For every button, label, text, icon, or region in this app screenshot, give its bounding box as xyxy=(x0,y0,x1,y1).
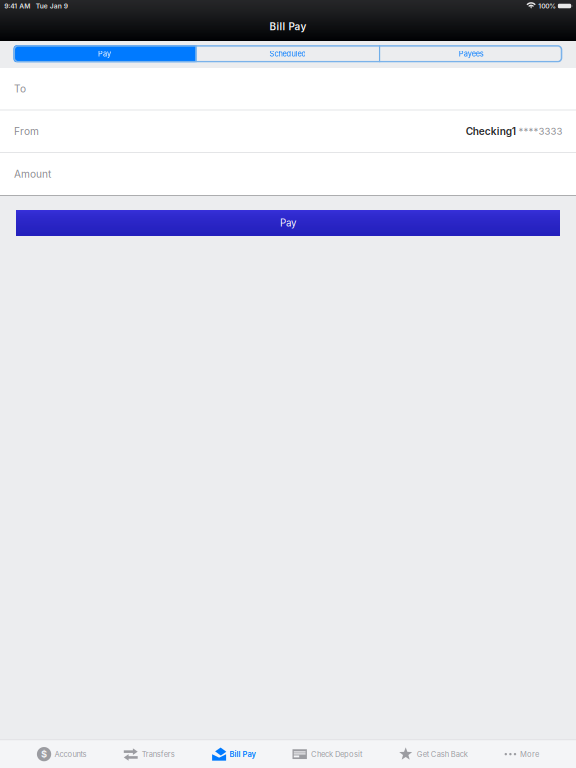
staticText: From xyxy=(14,125,39,137)
staticText: To xyxy=(14,83,26,95)
staticText: Pay xyxy=(98,49,111,58)
staticText: 9:41 AM xyxy=(4,2,30,10)
staticText: Bill Pay xyxy=(229,750,255,759)
staticText: Payees xyxy=(459,49,484,58)
button[interactable]: To xyxy=(0,68,576,109)
button[interactable]: Amount xyxy=(0,153,576,195)
staticText: $ xyxy=(41,748,47,760)
button[interactable]: From xyxy=(0,110,576,152)
button[interactable]: Scheduled xyxy=(197,45,379,62)
staticText: Bill Pay xyxy=(269,20,306,33)
staticText: More xyxy=(520,750,539,759)
staticText: Amount xyxy=(14,168,51,180)
button[interactable]: Pay xyxy=(13,45,196,62)
staticText: 100% xyxy=(538,2,556,10)
staticText: Accounts xyxy=(54,750,86,759)
button[interactable]: Transfers xyxy=(123,740,175,768)
staticText: Get Cash Back xyxy=(417,750,468,759)
button[interactable]: Pay xyxy=(16,210,560,236)
staticText: Checking1 xyxy=(466,125,516,137)
staticText: Transfers xyxy=(142,750,175,759)
button[interactable]: Check Deposit xyxy=(292,740,362,768)
staticText: Tue Jan 9 xyxy=(36,2,68,10)
button[interactable]: $ xyxy=(37,740,86,768)
button[interactable]: More xyxy=(505,740,539,768)
staticText: Check Deposit xyxy=(311,750,362,759)
staticText: ****3333 xyxy=(518,125,562,137)
button[interactable]: Get Cash Back xyxy=(399,740,468,768)
button[interactable]: Bill Pay xyxy=(212,740,255,768)
staticText: Pay xyxy=(280,217,296,229)
button[interactable]: Payees xyxy=(380,45,562,62)
staticText: Scheduled xyxy=(269,49,306,58)
